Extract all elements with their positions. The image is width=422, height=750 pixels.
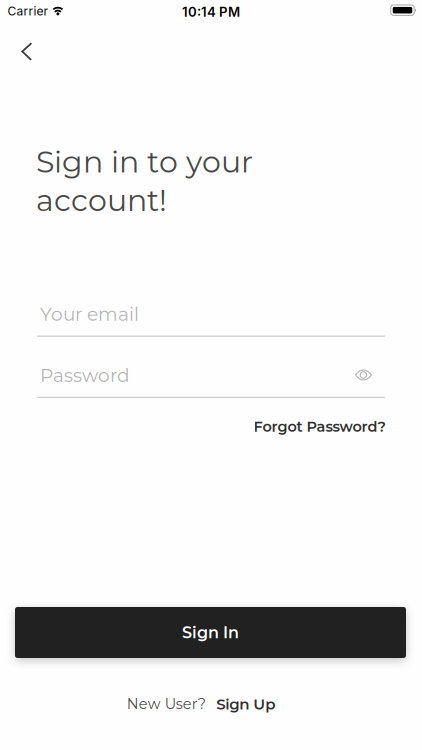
button[interactable]: Forgot Password?	[247, 414, 385, 439]
staticText: Forgot Password?	[253, 418, 385, 435]
button[interactable]: Back	[5, 31, 49, 71]
staticText: Sign Up	[216, 695, 275, 713]
staticText: Password	[40, 364, 130, 387]
button[interactable]: Show password	[347, 360, 379, 390]
button[interactable]: Sign Up	[211, 691, 280, 717]
staticText: 10:14 PM	[182, 4, 240, 20]
staticText: Your email	[40, 303, 139, 325]
staticText: Sign in to your account!	[36, 143, 253, 218]
staticText: New User?	[127, 695, 206, 713]
staticText: Carrier	[7, 4, 48, 18]
staticText: Sign In	[182, 623, 239, 642]
button[interactable]: Sign In	[15, 607, 406, 658]
